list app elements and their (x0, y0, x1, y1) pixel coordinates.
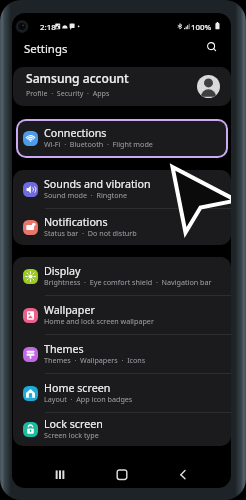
staticText: Layout · App icon badges (44, 394, 133, 404)
button[interactable]: Connections (18, 121, 226, 156)
button[interactable]: Home screen (13, 374, 231, 412)
staticText: 100% (191, 22, 212, 33)
button[interactable]: Notifications (13, 209, 231, 245)
button[interactable]: Lock screen (13, 413, 231, 446)
staticText: Brightness · Eye comfort shield · Naviga… (44, 277, 212, 287)
staticText: Settings (24, 41, 68, 57)
staticText: Home screen (44, 381, 111, 396)
button[interactable]: Search (203, 38, 221, 56)
button[interactable]: Home (110, 458, 134, 488)
button[interactable]: Themes (13, 335, 231, 373)
staticText: Connections (44, 126, 107, 141)
staticText: Notifications (44, 215, 108, 230)
staticText: Screen lock type (44, 430, 99, 440)
button[interactable]: Recents (48, 458, 72, 488)
staticText: Wi-Fi · Bluetooth · Flight mode (44, 139, 153, 149)
staticText: Home and lock screen wallpaper (44, 316, 154, 326)
staticText: Sound mode · Ringtone (44, 190, 128, 200)
staticText: Samsung account (26, 70, 129, 86)
button[interactable]: Sounds and vibration (13, 170, 231, 208)
staticText: Display (44, 264, 81, 279)
button[interactable]: Display (13, 257, 231, 295)
button[interactable]: Wallpaper (13, 296, 231, 334)
staticText: Profile · Security · Apps (26, 88, 110, 98)
staticText: Sounds and vibration (44, 177, 151, 192)
staticText: Themes (44, 342, 84, 357)
staticText: Lock screen (44, 417, 103, 432)
button[interactable]: Back (171, 458, 195, 488)
staticText: Wallpaper (44, 303, 95, 318)
staticText: Status bar · Do not disturb (44, 228, 137, 238)
staticText: Themes · Wallpapers · Icons (44, 355, 146, 365)
button[interactable]: Samsung account (13, 67, 231, 106)
staticText: 2:18 (40, 22, 56, 33)
